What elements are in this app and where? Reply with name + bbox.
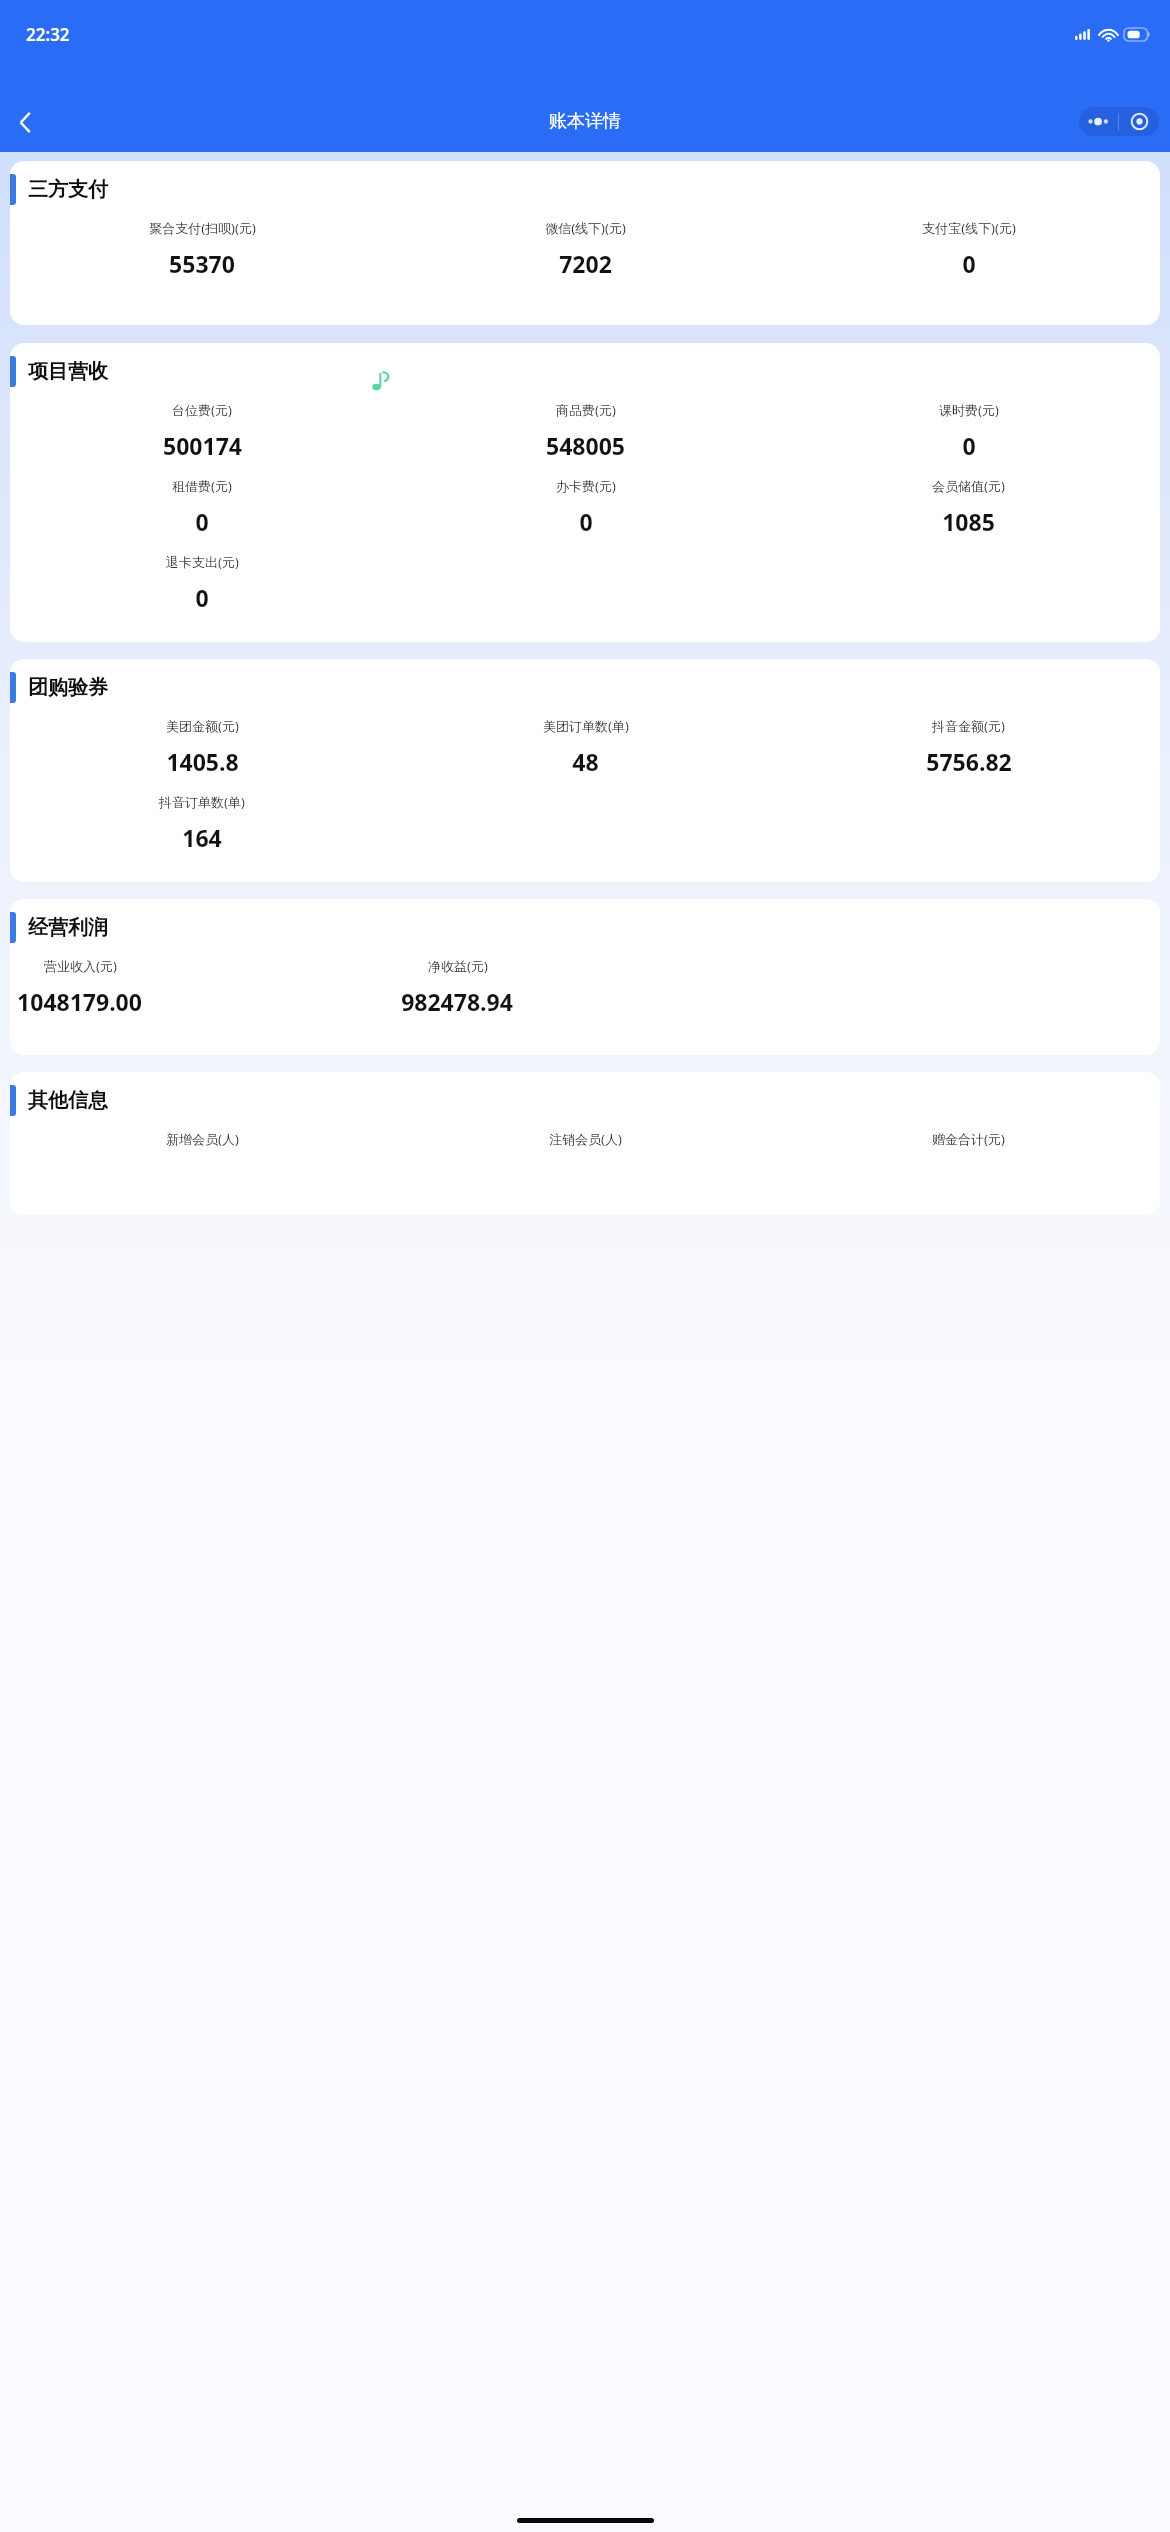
staticText: 三方支付 — [28, 177, 108, 202]
staticText: 1085 — [942, 506, 995, 537]
staticText: 会员储值(元) — [932, 477, 1005, 495]
button[interactable]: Menu and close — [1079, 107, 1159, 136]
staticText: 0 — [195, 506, 209, 537]
staticText: 0 — [962, 430, 976, 461]
staticText: 退卡支出(元) — [166, 553, 239, 571]
staticText: 净收益(元) — [428, 957, 488, 975]
staticText: 台位费(元) — [172, 401, 232, 419]
staticText: 聚合支付(扫呗)(元) — [149, 219, 256, 237]
staticText: 办卡费(元) — [556, 477, 616, 495]
staticText: 经营利润 — [28, 915, 108, 940]
button[interactable]: 经营利润 — [10, 899, 1160, 1055]
button[interactable]: Music — [356, 356, 408, 408]
staticText: 其他信息 — [28, 1088, 108, 1113]
button[interactable]: 项目营收 — [10, 343, 1160, 642]
staticText: 5756.82 — [926, 746, 1012, 777]
staticText: 项目营收 — [28, 359, 108, 384]
staticText: 22:32 — [26, 23, 70, 46]
staticText: 48 — [572, 746, 599, 777]
staticText: 982478.94 — [401, 986, 513, 1017]
staticText: 抖音订单数(单) — [159, 793, 245, 811]
staticText: 账本详情 — [549, 110, 621, 133]
staticText: 团购验券 — [28, 675, 108, 700]
staticText: 1405.8 — [166, 746, 239, 777]
staticText: 商品费(元) — [556, 401, 616, 419]
button[interactable]: 三方支付 — [10, 161, 1160, 325]
staticText: 548005 — [546, 430, 625, 461]
staticText: 0 — [579, 506, 593, 537]
staticText: 课时费(元) — [939, 401, 999, 419]
staticText: 7202 — [559, 248, 612, 279]
staticText: 支付宝(线下)(元) — [922, 219, 1016, 237]
staticText: 营业收入(元) — [44, 957, 117, 975]
staticText: 抖音金额(元) — [932, 717, 1005, 735]
button[interactable]: 其他信息 — [10, 1072, 1160, 1215]
staticText: 164 — [182, 822, 222, 853]
staticText: 美团金额(元) — [166, 717, 239, 735]
staticText: 新增会员(人) — [166, 1130, 239, 1148]
button[interactable]: 团购验券 — [10, 659, 1160, 882]
button[interactable]: Back — [3, 100, 47, 144]
staticText: 0 — [962, 248, 976, 279]
staticText: 1048179.00 — [17, 986, 142, 1017]
staticText: 租借费(元) — [172, 477, 232, 495]
staticText: 美团订单数(单) — [543, 717, 629, 735]
staticText: 0 — [195, 582, 209, 613]
staticText: 注销会员(人) — [549, 1130, 622, 1148]
staticText: 500174 — [163, 430, 242, 461]
staticText: 赠金合计(元) — [932, 1130, 1005, 1148]
staticText: 55370 — [169, 248, 235, 279]
staticText: 微信(线下)(元) — [545, 219, 626, 237]
